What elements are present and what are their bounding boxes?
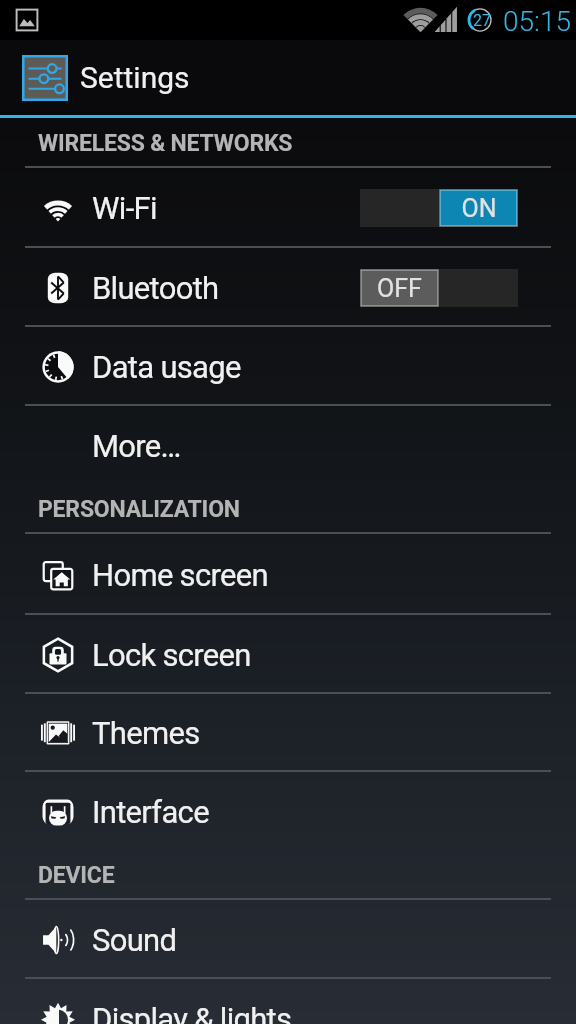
button[interactable]: More… [0,406,576,485]
staticText: Lock screen [92,637,251,673]
staticText: 05:15 [503,5,572,38]
staticText: Home screen [92,557,268,593]
staticText: Wi-Fi [92,190,157,226]
button[interactable]: Display & lights [0,979,576,1024]
staticText: DEVICE [38,862,115,889]
button[interactable]: Themes [0,694,576,772]
staticText: 27 [473,11,491,30]
other: Screenshot captured [14,7,40,33]
staticText: Display & lights [92,1001,292,1024]
staticText: PERSONALIZATION [38,496,240,523]
staticText: More… [92,428,181,464]
staticText: ON [461,194,497,223]
staticText: Settings [80,60,190,95]
button[interactable]: Bluetooth [0,248,576,327]
button[interactable]: Settings [0,40,576,115]
staticText: Sound [92,922,177,958]
staticText: Interface [92,794,209,830]
button[interactable]: Home screen [0,534,576,615]
staticText: Themes [92,715,200,751]
staticText: Data usage [92,349,241,385]
button[interactable]: Interface [0,772,576,851]
staticText: WIRELESS & NETWORKS [38,130,293,157]
button[interactable]: Sound [0,900,576,979]
button[interactable]: Bluetooth off [360,269,518,307]
staticText: OFF [377,274,422,303]
button[interactable]: Lock screen [0,615,576,694]
button[interactable]: Wi-Fi [0,168,576,248]
button[interactable]: Data usage [0,327,576,406]
button[interactable]: Wi-Fi on [360,189,518,227]
staticText: Bluetooth [92,270,219,306]
